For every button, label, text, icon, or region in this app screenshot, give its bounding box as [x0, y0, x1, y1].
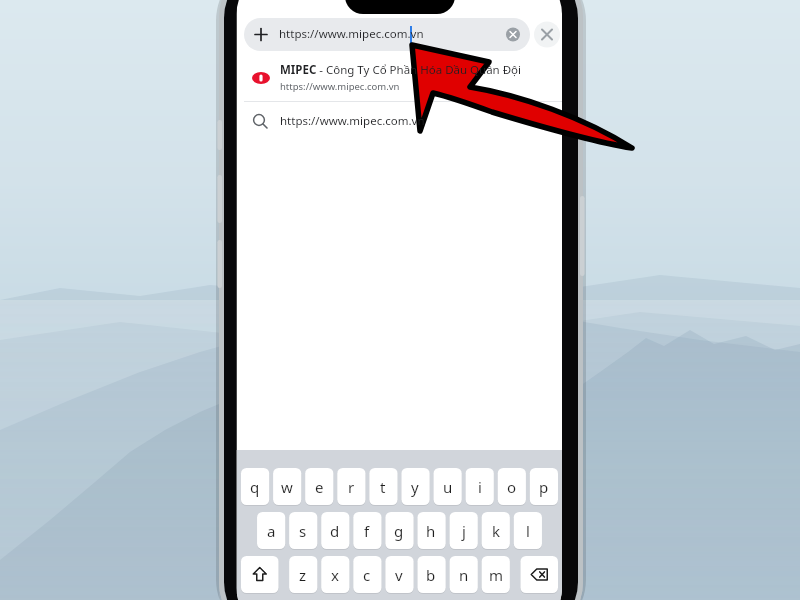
staticText: https://www.mipec.com.vn [280, 80, 400, 93]
staticText: v [395, 565, 403, 585]
staticText: h [426, 521, 436, 541]
staticText: t [380, 477, 386, 497]
staticText: g [394, 521, 404, 541]
button[interactable]: o [498, 468, 526, 505]
staticText: k [492, 521, 501, 541]
button[interactable] [244, 18, 530, 51]
staticText: https://www.mipec.com.vn [280, 113, 425, 129]
button[interactable] [244, 58, 562, 101]
button[interactable]: r [337, 468, 365, 505]
button[interactable]: p [530, 468, 558, 505]
staticText: y [411, 477, 419, 497]
staticText: l [526, 521, 530, 541]
staticText: z [299, 565, 307, 585]
staticText: r [348, 477, 355, 497]
staticText: a [267, 521, 276, 541]
button[interactable]: z [289, 556, 317, 593]
button[interactable]: n [450, 556, 478, 593]
staticText: MIPEC - Công Ty Cổ Phần Hóa Dầu Quân Đội [280, 62, 522, 78]
staticText: j [462, 521, 466, 541]
button[interactable]: e [305, 468, 333, 505]
button[interactable]: x [321, 556, 349, 593]
button[interactable]: w [273, 468, 301, 505]
button[interactable]: i [466, 468, 494, 505]
button[interactable]: v [385, 556, 413, 593]
staticText: u [443, 477, 453, 497]
button[interactable]: t [369, 468, 397, 505]
button[interactable]: y [401, 468, 429, 505]
button[interactable]: g [385, 512, 413, 549]
button[interactable]: a [257, 512, 285, 549]
button[interactable]: Close [534, 21, 561, 48]
button[interactable]: b [417, 556, 445, 593]
staticText: b [426, 565, 436, 585]
button[interactable]: s [289, 512, 317, 549]
button[interactable] [244, 103, 562, 137]
button[interactable]: Clear text [503, 24, 524, 45]
button[interactable]: New tab [250, 23, 272, 45]
button[interactable]: c [353, 556, 381, 593]
staticText: q [250, 477, 260, 497]
staticText: n [459, 565, 469, 585]
button[interactable]: k [482, 512, 510, 549]
button[interactable]: u [434, 468, 462, 505]
button[interactable]: j [450, 512, 478, 549]
button[interactable]: m [482, 556, 510, 593]
button[interactable]: f [353, 512, 381, 549]
staticText: x [331, 565, 339, 585]
staticText: https://www.mipec.com.vn [279, 26, 424, 42]
staticText: p [539, 477, 549, 497]
button[interactable]: h [417, 512, 445, 549]
staticText: c [363, 565, 371, 585]
button[interactable]: d [321, 512, 349, 549]
button[interactable]: l [514, 512, 542, 549]
staticText: i [478, 477, 482, 497]
staticText: f [364, 521, 370, 541]
staticText: s [299, 521, 307, 541]
staticText: o [507, 477, 517, 497]
staticText: m [489, 565, 504, 585]
staticText: d [330, 521, 340, 541]
button[interactable]: q [241, 468, 269, 505]
staticText: w [281, 477, 293, 497]
staticText: e [315, 477, 324, 497]
